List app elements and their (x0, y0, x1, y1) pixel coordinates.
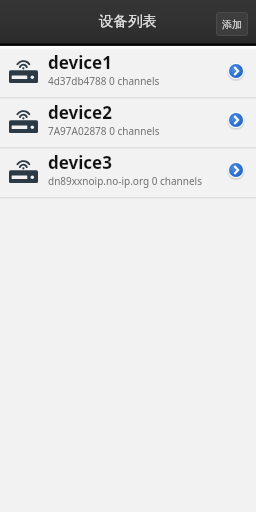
staticText: 设备列表 (99, 12, 157, 30)
staticText: 添加 (222, 18, 242, 31)
button[interactable]: Open device details (222, 157, 250, 185)
button[interactable]: Open device details (222, 107, 250, 135)
staticText: dn89xxnoip.no-ip.org 0 channels (48, 174, 202, 188)
button[interactable]: 添加 (216, 12, 248, 36)
staticText: device1 (48, 51, 112, 74)
staticText: device2 (48, 101, 112, 124)
button[interactable]: device3 (0, 149, 256, 197)
button[interactable]: Open device details (222, 58, 250, 86)
staticText: 7A97A02878 0 channels (48, 124, 160, 138)
button[interactable]: device1 (0, 50, 256, 97)
staticText: device3 (48, 151, 112, 174)
staticText: 4d37db4788 0 channels (48, 74, 160, 88)
button[interactable]: device2 (0, 99, 256, 147)
